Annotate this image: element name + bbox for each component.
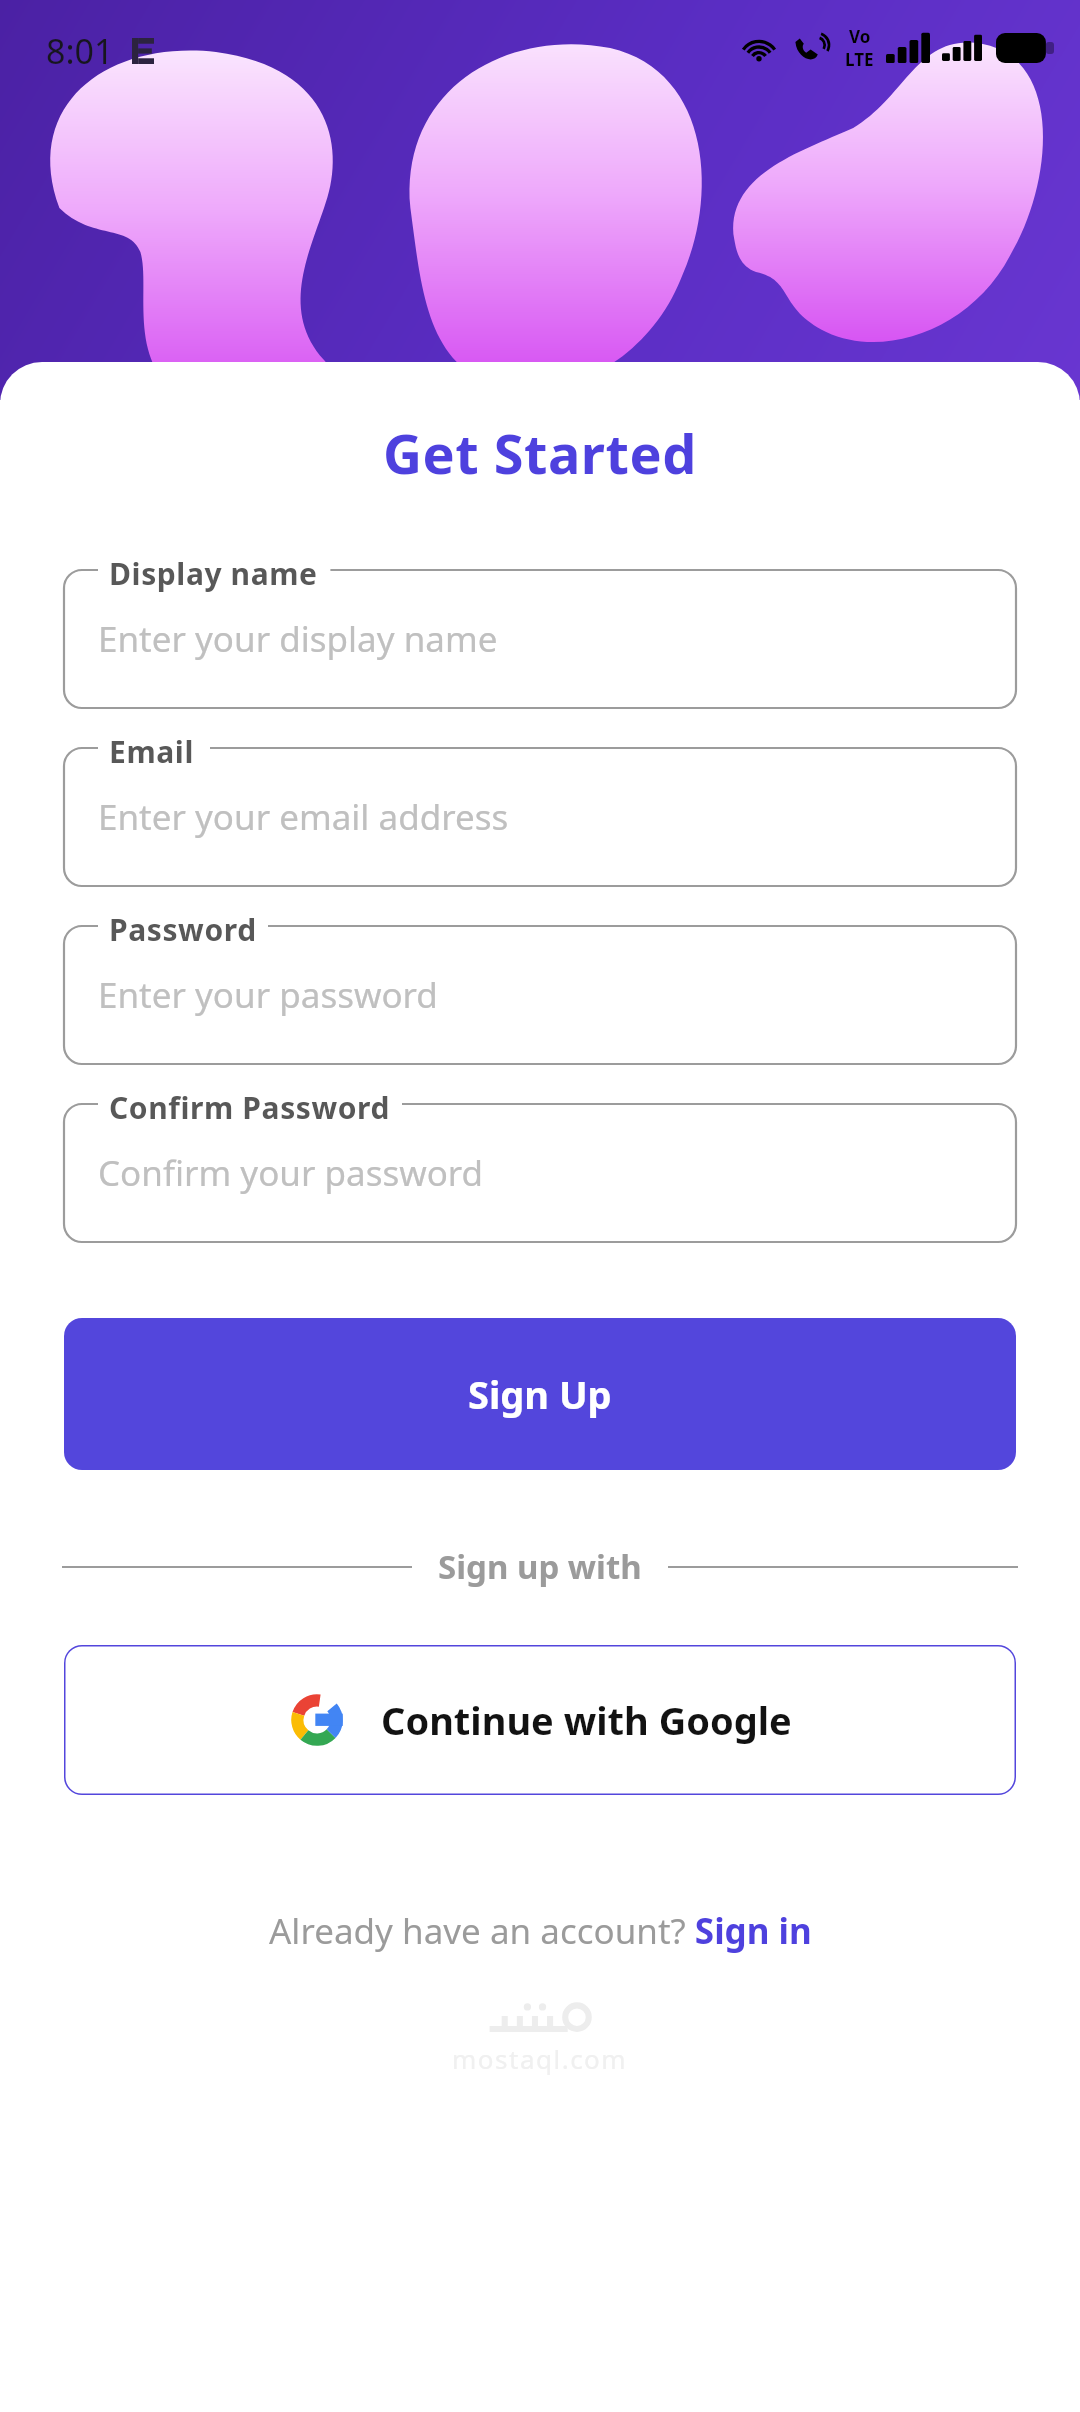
staticText: Already have an account? Sign in xyxy=(269,1907,812,1955)
staticText: Enter your email address xyxy=(98,793,509,841)
other: Google logo xyxy=(289,1692,345,1748)
button[interactable]: Email xyxy=(64,748,1016,886)
staticText: 8:01 xyxy=(46,28,114,74)
staticText: Vo xyxy=(849,25,871,48)
staticText: Sign up with xyxy=(438,1544,642,1589)
staticText: Enter your display name xyxy=(98,615,498,663)
staticText: Sign Up xyxy=(468,1368,612,1420)
button[interactable]: Sign Up xyxy=(64,1318,1016,1470)
staticText: Password xyxy=(109,909,257,950)
button[interactable]: Password xyxy=(64,926,1016,1064)
staticText: mostaql.com xyxy=(452,2041,628,2076)
staticText: Email xyxy=(109,731,194,772)
staticText: Display name xyxy=(109,553,318,594)
staticText: LTE xyxy=(845,48,874,71)
button[interactable]: Already have an account? Sign in xyxy=(0,1907,1080,1955)
button[interactable]: Display name xyxy=(64,570,1016,708)
staticText: Enter your password xyxy=(98,971,438,1019)
staticText: Get Started xyxy=(383,416,697,490)
button[interactable]: Confirm Password xyxy=(64,1104,1016,1242)
staticText: Confirm your password xyxy=(98,1149,484,1197)
staticText: Confirm Password xyxy=(109,1087,391,1128)
staticText: Continue with Google xyxy=(381,1694,792,1746)
button[interactable]: Google logo xyxy=(64,1645,1016,1795)
